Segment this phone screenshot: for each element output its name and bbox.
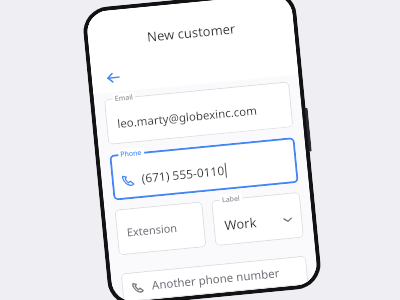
staticText: Work <box>224 213 258 234</box>
staticText: Another phone number <box>151 265 280 293</box>
button[interactable]: Another phone number <box>131 255 309 300</box>
button[interactable]: Label <box>211 192 304 246</box>
button[interactable]: Phone <box>109 137 299 201</box>
staticText: Extension <box>126 220 178 239</box>
button[interactable]: Email <box>104 81 293 145</box>
staticText: leo.marty@globexinc.com <box>116 102 258 132</box>
button[interactable]: Extension <box>114 201 206 255</box>
staticText: (671) 555-0110 <box>141 162 225 186</box>
staticText: New customer <box>146 19 236 46</box>
staticText: Email <box>114 92 133 104</box>
other: Back <box>105 69 122 86</box>
button[interactable]: Back <box>99 63 127 91</box>
staticText: Label <box>222 194 240 205</box>
staticText: Phone <box>120 148 143 160</box>
